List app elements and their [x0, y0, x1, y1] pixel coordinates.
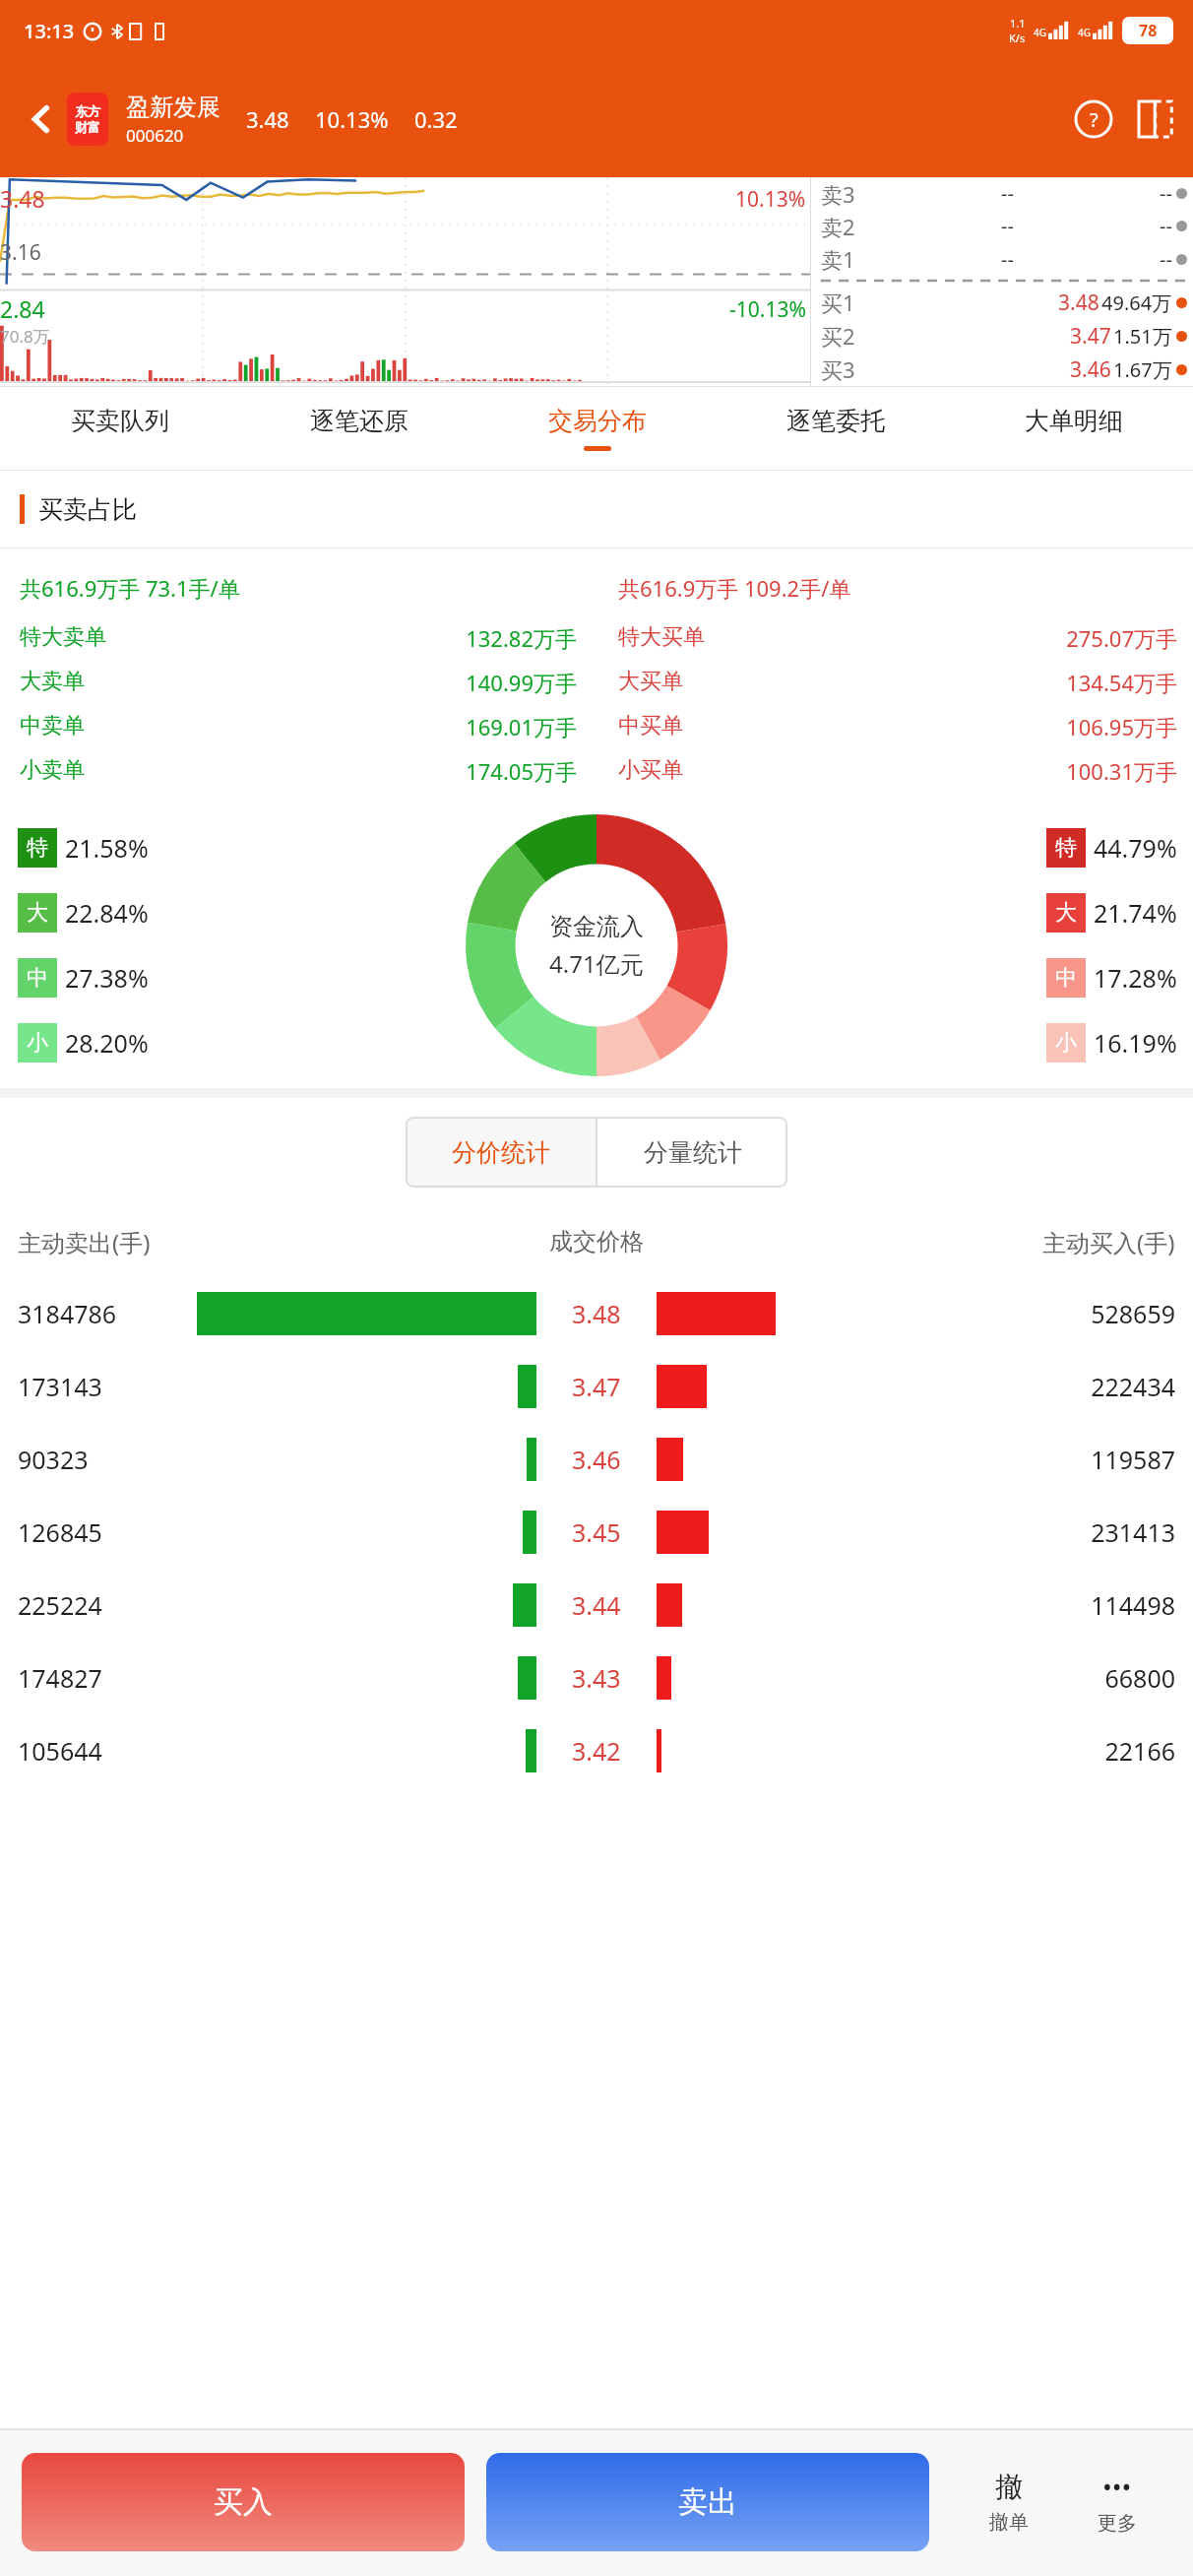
staticText: 小买单 — [618, 756, 683, 784]
staticText: 共616.9万手 73.1手/单 — [20, 573, 596, 603]
button[interactable]: Help — [1071, 97, 1116, 142]
button[interactable]: 逐笔还原 — [239, 387, 478, 470]
staticText: 中卖单 — [20, 712, 85, 740]
staticText: 134.54万手 — [596, 668, 1177, 697]
staticText: 更多 — [1098, 2511, 1137, 2536]
staticText: -10.13% — [729, 295, 806, 324]
staticText: 3.43 — [572, 1661, 621, 1695]
staticText: 3.44 — [572, 1588, 621, 1622]
staticText: 66800 — [996, 1661, 1175, 1695]
staticText: 成交价格 — [549, 1227, 644, 1256]
staticText: 16.19% — [1094, 1026, 1177, 1060]
staticText: 买2 — [821, 321, 855, 351]
staticText: 小 — [27, 1029, 48, 1057]
staticText: 买3 — [821, 354, 855, 384]
button[interactable]: 174827 — [0, 1642, 1193, 1714]
staticText: 分价统计 — [452, 1137, 550, 1168]
staticText: 大 — [27, 899, 48, 927]
staticText: 3184786 — [18, 1297, 197, 1330]
staticText: 49.64万 — [1101, 290, 1172, 316]
button[interactable]: 买卖队列 — [0, 387, 239, 470]
staticText: 中买单 — [618, 712, 683, 740]
staticText: 17.28% — [1094, 961, 1177, 995]
staticText: 特 — [27, 834, 48, 862]
staticText: 169.01万手 — [0, 712, 577, 741]
staticText: 逐笔委托 — [786, 406, 885, 436]
staticText: 主动买入(手) — [1042, 1226, 1175, 1258]
button[interactable]: 逐笔委托 — [717, 387, 955, 470]
button[interactable]: 大单明细 — [955, 387, 1193, 470]
staticText: -- — [1001, 213, 1014, 239]
staticText: 174827 — [18, 1661, 197, 1695]
staticText: 特 — [1055, 834, 1077, 862]
button[interactable]: 交易分布 — [478, 387, 717, 470]
button[interactable]: 173143 — [0, 1350, 1193, 1423]
button[interactable]: 126845 — [0, 1496, 1193, 1569]
button[interactable]: 卖出 — [486, 2453, 929, 2551]
staticText: 10.13% — [315, 104, 389, 134]
staticText: 10.13% — [735, 185, 806, 214]
button[interactable]: 分价统计 — [406, 1117, 596, 1188]
staticText: 3.48 — [572, 1297, 621, 1330]
staticText: -- — [1160, 180, 1172, 207]
staticText: 3.48 — [0, 183, 45, 214]
button[interactable]: 撤 — [955, 2428, 1063, 2576]
staticText: 大买单 — [618, 668, 683, 695]
staticText: 70.8万 — [0, 325, 50, 348]
button[interactable]: 分量统计 — [597, 1117, 787, 1188]
staticText: 交易分布 — [548, 406, 647, 436]
button[interactable]: ••• — [1063, 2428, 1171, 2576]
staticText: -- — [1160, 213, 1172, 239]
staticText: 卖出 — [678, 2483, 737, 2521]
staticText: 小 — [1055, 1029, 1077, 1057]
staticText: 盈新发展 — [126, 93, 220, 122]
staticText: -- — [1001, 180, 1014, 207]
button[interactable]: 105644 — [0, 1714, 1193, 1787]
staticText: 528659 — [996, 1297, 1175, 1330]
staticText: 3.16 — [0, 238, 41, 267]
staticText: 3.48 — [246, 104, 289, 134]
staticText: 大卖单 — [20, 668, 85, 695]
staticText: 173143 — [18, 1370, 197, 1403]
staticText: 114498 — [996, 1588, 1175, 1622]
staticText: 126845 — [18, 1515, 197, 1549]
staticText: 共616.9万手 109.2手/单 — [618, 573, 1193, 603]
button[interactable]: 225224 — [0, 1569, 1193, 1642]
staticText: 撤 — [995, 2470, 1023, 2504]
staticText: 3.46 — [572, 1443, 621, 1476]
button[interactable]: Fullscreen — [1132, 97, 1177, 142]
staticText: 000620 — [126, 124, 184, 147]
staticText: 1.51万 — [1113, 323, 1172, 350]
button[interactable]: East Money logo — [67, 93, 108, 146]
staticText: 2.84 — [0, 293, 45, 324]
staticText: 1.67万 — [1113, 356, 1172, 383]
staticText: 买卖占比 — [38, 494, 137, 525]
staticText: 22.84% — [65, 896, 149, 930]
staticText: 231413 — [996, 1515, 1175, 1549]
staticText: ? — [1090, 106, 1099, 133]
staticText: 1.1 — [1010, 16, 1026, 31]
staticText: 106.95万手 — [596, 712, 1177, 741]
staticText: 买1 — [821, 288, 855, 317]
button[interactable]: 90323 — [0, 1423, 1193, 1496]
staticText: 275.07万手 — [596, 623, 1177, 653]
staticText: 4.71亿元 — [549, 947, 644, 980]
staticText: 中 — [1055, 964, 1077, 992]
staticText: 中 — [27, 964, 48, 992]
staticText: 买入 — [214, 2483, 273, 2521]
staticText: 卖2 — [821, 212, 855, 241]
button[interactable]: 3184786 — [0, 1277, 1193, 1350]
staticText: 90323 — [18, 1443, 197, 1476]
staticText: 22166 — [996, 1734, 1175, 1768]
staticText: 4G — [1034, 26, 1046, 39]
button[interactable]: Back — [16, 94, 67, 145]
staticText: K/s — [1009, 31, 1026, 45]
button[interactable]: 买入 — [22, 2453, 465, 2551]
staticText: 3.47 — [572, 1370, 621, 1403]
staticText: 225224 — [18, 1588, 197, 1622]
staticText: 28.20% — [65, 1026, 149, 1060]
staticText: 222434 — [996, 1370, 1175, 1403]
staticText: 逐笔还原 — [310, 406, 408, 436]
staticText: 特大卖单 — [20, 623, 106, 651]
staticText: 27.38% — [65, 961, 149, 995]
